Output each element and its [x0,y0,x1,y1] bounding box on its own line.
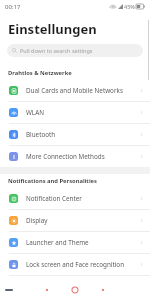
button[interactable]: Display [0,210,150,231]
staticText: Lock screen and Face recognition [26,260,139,269]
staticText: 00:17 [5,3,21,11]
staticText: Pull down to search settings [20,47,93,54]
staticText: Launcher and Theme [26,238,139,247]
button[interactable]: Notification Center [0,188,150,209]
button[interactable]: WLAN [0,102,150,123]
button[interactable]: Lock screen and Face recognition [0,254,150,275]
button[interactable]: Bluetooth [0,124,150,145]
staticText: WLAN [26,108,139,117]
staticText: Bluetooth [26,130,139,139]
staticText: Einstellungen [8,20,97,38]
button[interactable]: Pull down to search settings [7,44,143,57]
staticText: Dual Cards and Mobile Networks [26,86,139,95]
staticText: Notifications and Personalities [8,177,97,185]
button[interactable]: Home [71,286,79,294]
button[interactable]: Dual Cards and Mobile Networks [0,80,150,101]
staticText: 45% [124,3,135,10]
button[interactable]: More Connection Methods [0,146,150,167]
button[interactable]: Back [5,289,13,291]
staticText: Display [26,216,139,225]
staticText: Drahtlos & Netzwerke [8,69,72,77]
staticText: Notification Center [26,194,139,203]
staticText: More Connection Methods [26,152,139,161]
button[interactable]: Launcher and Theme [0,232,150,253]
